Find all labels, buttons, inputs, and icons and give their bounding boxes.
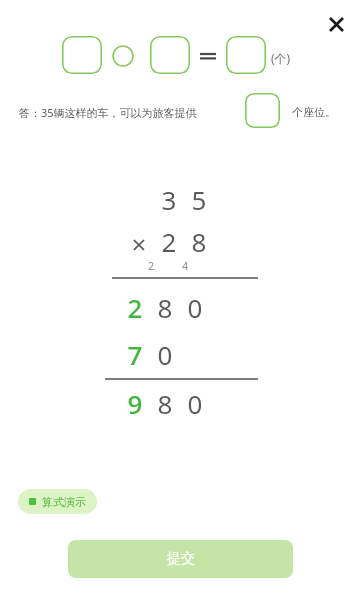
button[interactable]: Answer input box bbox=[150, 36, 190, 74]
staticText: 8 bbox=[152, 386, 178, 600]
staticText: (个) bbox=[271, 50, 291, 66]
staticText: 个座位。 bbox=[292, 105, 336, 119]
button[interactable]: 算式演示 bbox=[18, 489, 97, 514]
staticText: 算式演示 bbox=[42, 495, 86, 509]
staticText: × bbox=[126, 226, 152, 600]
staticText: 7 bbox=[122, 337, 148, 600]
button[interactable]: Close bbox=[320, 8, 352, 40]
staticText: 5 bbox=[186, 182, 212, 600]
button[interactable]: Answer input box bbox=[62, 36, 102, 74]
button[interactable]: Answer input box bbox=[226, 36, 266, 74]
staticText: 9 bbox=[122, 386, 148, 600]
staticText: 8 bbox=[186, 224, 212, 600]
staticText: 3 bbox=[156, 182, 182, 600]
staticText: 2 bbox=[142, 259, 160, 600]
staticText: 2 bbox=[156, 224, 182, 600]
button[interactable]: Answer input box bbox=[245, 93, 280, 128]
button[interactable]: 提交 bbox=[68, 540, 293, 578]
button[interactable]: Operator bbox=[112, 45, 134, 67]
staticText: 4 bbox=[176, 259, 194, 600]
staticText: 0 bbox=[182, 290, 208, 600]
staticText: 0 bbox=[152, 337, 178, 600]
staticText: 8 bbox=[152, 290, 178, 600]
staticText: 答：35辆这样的车，可以为旅客提供 bbox=[19, 105, 197, 120]
staticText: 0 bbox=[182, 386, 208, 600]
staticText: 提交 bbox=[167, 550, 195, 568]
staticText: 2 bbox=[122, 290, 148, 600]
